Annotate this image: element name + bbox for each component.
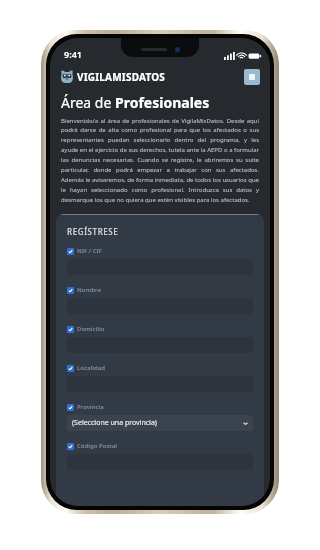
staticText: Domicilio	[77, 325, 105, 333]
button[interactable]: Nombre	[67, 285, 101, 295]
staticText: (Seleccione una provincia)	[72, 418, 157, 428]
button[interactable]: (Seleccione una provincia)	[67, 415, 253, 431]
staticText: Localidad	[77, 364, 105, 372]
button[interactable]: Localidad	[67, 363, 105, 373]
button[interactable]: Open menu	[244, 69, 260, 85]
staticText: REGÍSTRESE	[67, 226, 119, 237]
staticText: Provincia	[77, 403, 104, 411]
staticText: Código Postal	[77, 442, 117, 450]
staticText: Área de Profesionales	[61, 93, 210, 112]
staticText: Nombre	[77, 286, 101, 294]
button[interactable]: Provincia	[67, 402, 104, 412]
staticText: VIGILAMISDATOS	[77, 70, 165, 84]
staticText: Bienvenido/a al área de profesionales de…	[61, 117, 259, 204]
staticText: NIF / CIF	[77, 247, 102, 255]
button[interactable]: Domicilio	[67, 324, 105, 334]
button[interactable]: Código Postal	[67, 441, 117, 451]
button[interactable]: NIF / CIF	[67, 246, 102, 256]
staticText: 9:41	[64, 48, 82, 60]
